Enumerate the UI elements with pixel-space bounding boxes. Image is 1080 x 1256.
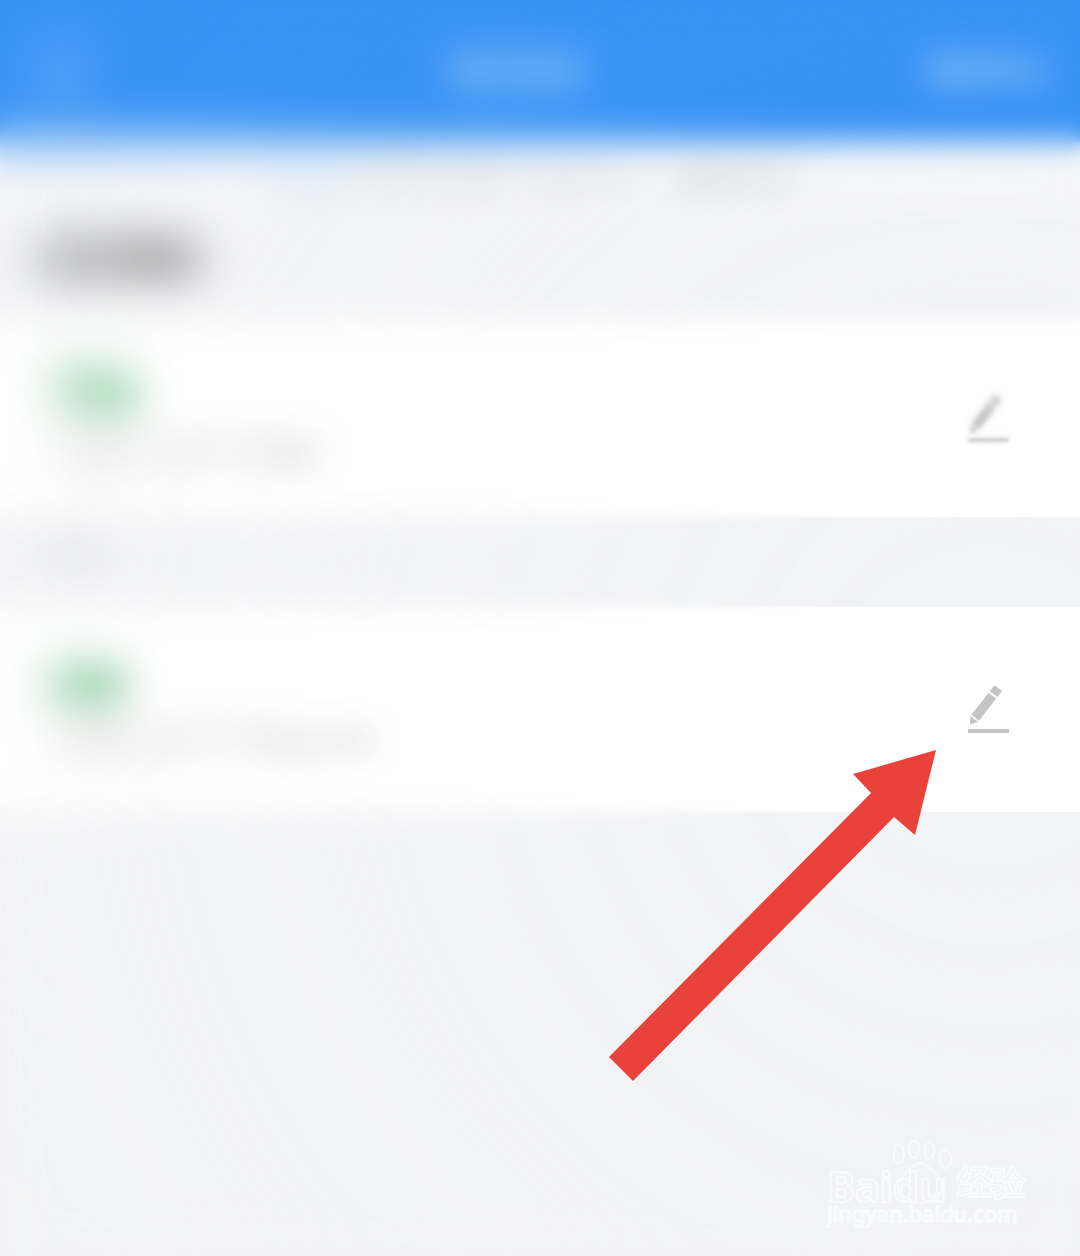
staticText: 安全中心 [527, 162, 643, 199]
button[interactable]: Edit [968, 687, 1010, 733]
staticText: 已认证 [267, 162, 354, 199]
button[interactable]: 邮箱 [0, 607, 1080, 812]
button[interactable]: 邮箱 [0, 607, 1080, 812]
button[interactable]: 邮箱 [0, 607, 1080, 812]
button[interactable]: Edit [968, 687, 1010, 733]
button[interactable]: Edit [968, 396, 1010, 442]
staticText: 账号绑定 [48, 236, 200, 284]
button[interactable]: 安全中心 [928, 52, 1048, 90]
staticText: 已绑定 138****8888 [52, 433, 318, 471]
staticText: 账号安全 [454, 50, 586, 92]
staticText: 账号绑定 [48, 236, 200, 284]
button[interactable]: Edit [968, 687, 1010, 733]
button[interactable]: 邮箱 [0, 607, 1080, 812]
button[interactable]: Back [26, 33, 102, 109]
button[interactable]: Back [26, 33, 102, 109]
staticText: 手机 [52, 367, 138, 421]
button[interactable]: Back [26, 33, 102, 109]
button[interactable]: Back [26, 33, 102, 109]
staticText: 账号绑定 [48, 236, 200, 284]
staticText: 账号安全 [454, 50, 586, 92]
button[interactable]: 手机 [0, 320, 1080, 517]
staticText: 账号绑定 [48, 236, 200, 284]
staticText: 邮箱 [52, 662, 124, 707]
button[interactable]: 手机 [0, 320, 1080, 517]
staticText: 已绑定 abc****@qq.com [52, 719, 376, 757]
button[interactable]: 安全中心 [928, 52, 1048, 90]
button[interactable]: Edit [968, 687, 1010, 733]
button[interactable]: 手机 [0, 320, 1080, 517]
button[interactable]: Back [26, 33, 102, 109]
button[interactable]: 手机 [0, 320, 1080, 517]
staticText: 账号安全 [454, 50, 586, 92]
button[interactable]: Edit [968, 687, 1010, 733]
staticText: 已认证 [267, 162, 354, 199]
staticText: 邮箱 [52, 662, 124, 707]
staticText: 账号安全 [454, 50, 586, 92]
button[interactable]: Edit [968, 687, 1010, 733]
button[interactable]: Edit [968, 687, 1010, 733]
button[interactable]: Back [26, 33, 102, 109]
staticText: 邮箱 [52, 662, 124, 707]
button[interactable]: 手机 [0, 320, 1080, 517]
staticText: 安全中心 [527, 162, 643, 199]
staticText: 已绑定 138****8888 [52, 433, 318, 471]
staticText: 已认证 [267, 162, 354, 199]
staticText: 查看详情 > [673, 160, 814, 200]
button[interactable]: 邮箱 [0, 607, 1080, 812]
button[interactable]: 手机 [0, 320, 1080, 517]
button[interactable]: 手机 [0, 320, 1080, 517]
button[interactable]: 安全中心 [928, 52, 1048, 90]
staticText: 已绑定 138****8888 [52, 433, 318, 471]
staticText: 账号安全 [454, 50, 586, 92]
staticText: 手机 [52, 367, 138, 421]
button[interactable]: Edit [968, 396, 1010, 442]
button[interactable]: 邮箱 [0, 607, 1080, 812]
button[interactable]: 安全中心 [928, 52, 1048, 90]
staticText: 已绑定 abc****@qq.com [52, 719, 376, 757]
button[interactable]: Edit [968, 687, 1010, 733]
button[interactable]: Back [26, 33, 102, 109]
staticText: 查看详情 > [673, 160, 814, 200]
staticText: 手机 [52, 367, 138, 421]
button[interactable]: Edit [968, 396, 1010, 442]
button[interactable]: Edit [968, 396, 1010, 442]
button[interactable]: 安全中心 [928, 52, 1048, 90]
staticText: 手机 [52, 367, 138, 421]
button[interactable]: Back [26, 33, 102, 109]
staticText: 安全中心 [527, 162, 643, 199]
staticText: 已认证 [267, 162, 354, 199]
staticText: 安全中心 [527, 162, 643, 199]
button[interactable]: 手机 [0, 320, 1080, 517]
staticText: 账号绑定 [48, 236, 200, 284]
staticText: 安全中心 [928, 52, 1048, 90]
button[interactable]: 手机 [0, 320, 1080, 517]
button[interactable]: Edit [968, 396, 1010, 442]
staticText: 已绑定 abc****@qq.com [52, 719, 376, 757]
button[interactable]: 安全中心 [928, 52, 1048, 90]
staticText: 已绑定 138****8888 [52, 433, 318, 471]
button[interactable]: 安全中心 [928, 52, 1048, 90]
staticText: 已绑定 abc****@qq.com [52, 719, 376, 757]
button[interactable]: 安全中心 [928, 52, 1048, 90]
button[interactable]: Back [26, 33, 102, 109]
button[interactable]: 邮箱 [0, 607, 1080, 812]
staticText: 已绑定 138****8888 [52, 433, 318, 471]
button[interactable]: 邮箱 [0, 607, 1080, 812]
button[interactable]: Edit [968, 396, 1010, 442]
staticText: 查看详情 > [673, 160, 814, 200]
button[interactable]: 安全中心 [928, 52, 1048, 90]
staticText: 账号安全 [454, 50, 586, 92]
button[interactable]: Edit [968, 396, 1010, 442]
button[interactable]: Edit [968, 396, 1010, 442]
staticText: 查看详情 > [673, 160, 814, 200]
button[interactable]: Edit [968, 687, 1010, 733]
button[interactable]: 邮箱 [0, 607, 1080, 812]
staticText: 查看详情 > [673, 160, 814, 200]
button[interactable]: Edit [968, 396, 1010, 442]
